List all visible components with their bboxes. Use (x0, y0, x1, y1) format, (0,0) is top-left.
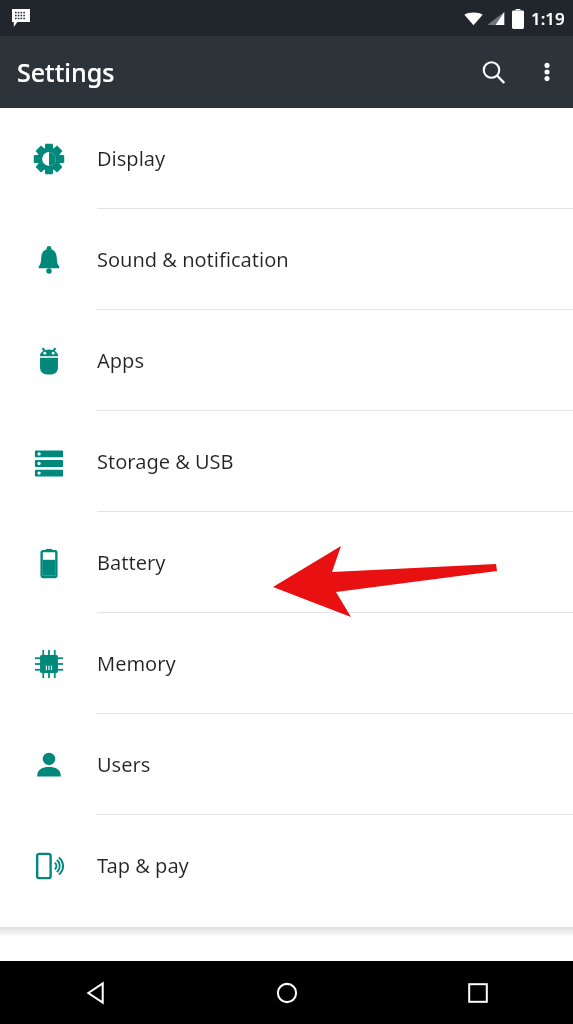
button[interactable]: Home (191, 961, 382, 1024)
button[interactable]: Display (0, 108, 573, 209)
button[interactable]: More options (521, 46, 573, 98)
staticText: Users (97, 751, 151, 778)
staticText: Tap & pay (97, 852, 189, 879)
button[interactable]: Tap & pay (0, 815, 573, 916)
button[interactable]: Apps (0, 310, 573, 411)
button[interactable]: Search (465, 44, 521, 100)
staticText: Memory (97, 650, 176, 677)
button[interactable]: Recent apps (382, 961, 573, 1024)
staticText: Sound & notification (97, 246, 289, 273)
staticText: 1:19 (531, 7, 565, 30)
staticText: Battery (97, 549, 166, 576)
staticText: Settings (17, 55, 115, 89)
button[interactable]: Storage & USB (0, 411, 573, 512)
button[interactable]: Memory (0, 613, 573, 714)
button[interactable]: Sound & notification (0, 209, 573, 310)
staticText: Display (97, 145, 166, 172)
button[interactable]: Battery (0, 512, 573, 613)
staticText: Storage & USB (97, 448, 234, 475)
button[interactable]: Back (0, 961, 191, 1024)
button[interactable]: Users (0, 714, 573, 815)
staticText: Apps (97, 347, 144, 374)
